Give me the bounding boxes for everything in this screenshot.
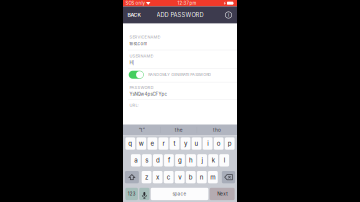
- staticText: d: [156, 157, 160, 164]
- button[interactable]: n: [197, 171, 207, 183]
- button[interactable]: w: [136, 137, 146, 150]
- staticText: b: [189, 173, 193, 181]
- button[interactable]: Next: [210, 188, 235, 200]
- button[interactable]: y: [181, 137, 190, 150]
- staticText: RANDOMLY GENERATE PASSWORD: [148, 72, 211, 77]
- staticText: c: [167, 173, 171, 181]
- staticText: SOS only: [126, 1, 145, 6]
- staticText: s: [145, 157, 148, 164]
- staticText: g: [178, 157, 182, 164]
- staticText: o: [217, 140, 221, 147]
- staticText: the: [175, 127, 183, 133]
- button[interactable]: Dictate: [139, 188, 149, 200]
- button[interactable]: t: [170, 137, 179, 150]
- staticText: Next: [217, 191, 227, 197]
- button[interactable]: z: [142, 171, 151, 183]
- staticText: URL:: [129, 103, 138, 108]
- staticText: y: [184, 140, 187, 147]
- button[interactable]: Shift: [125, 171, 139, 183]
- button[interactable]: p: [225, 137, 235, 150]
- staticText: j: [202, 157, 203, 164]
- staticText: q: [128, 140, 132, 147]
- staticText: u: [195, 140, 199, 147]
- button[interactable]: m: [208, 171, 218, 183]
- button[interactable]: Info: [220, 6, 237, 24]
- staticText: a: [134, 157, 137, 164]
- button[interactable]: v: [175, 171, 185, 183]
- button[interactable]: o: [214, 137, 224, 150]
- staticText: l: [224, 157, 225, 164]
- staticText: w: [139, 140, 144, 147]
- staticText: t: [173, 140, 175, 147]
- button[interactable]: BACK: [123, 6, 149, 24]
- button[interactable]: i: [203, 137, 213, 150]
- staticText: i: [207, 140, 208, 147]
- staticText: “t”: [139, 127, 145, 133]
- staticText: YsNQw4psCFYpc: [129, 92, 167, 97]
- staticText: p: [228, 140, 232, 147]
- button[interactable]: u: [192, 137, 201, 150]
- button[interactable]: k: [208, 154, 218, 166]
- button[interactable]: l: [219, 154, 229, 166]
- button[interactable]: Delete: [222, 171, 235, 183]
- staticText: z: [145, 173, 148, 181]
- staticText: h: [189, 157, 193, 164]
- button[interactable]: space: [151, 188, 208, 200]
- staticText: e: [150, 140, 154, 147]
- staticText: v: [178, 173, 181, 181]
- button[interactable]: h: [186, 154, 196, 166]
- staticText: SERVICE NAME:: [129, 35, 160, 39]
- staticText: USERNAME:: [129, 54, 153, 58]
- button[interactable]: g: [175, 154, 185, 166]
- staticText: x: [156, 173, 159, 181]
- button[interactable]: c: [164, 171, 174, 183]
- staticText: tho: [213, 127, 221, 133]
- staticText: i: [228, 12, 229, 18]
- staticText: k: [212, 157, 215, 164]
- staticText: 123: [128, 191, 136, 197]
- staticText: space: [173, 191, 187, 197]
- staticText: PASSWORD:: [129, 85, 154, 90]
- staticText: r: [162, 140, 164, 147]
- button[interactable]: b: [186, 171, 196, 183]
- button[interactable]: d: [153, 154, 163, 166]
- button[interactable]: r: [159, 137, 168, 150]
- staticText: H|: [129, 60, 133, 65]
- button[interactable]: e: [147, 137, 157, 150]
- button[interactable]: j: [197, 154, 207, 166]
- button[interactable]: Randomly generate password: [129, 71, 144, 79]
- button[interactable]: a: [131, 154, 141, 166]
- staticText: m: [210, 173, 215, 181]
- staticText: n: [200, 173, 204, 181]
- staticText: BACK: [127, 12, 141, 18]
- button[interactable]: x: [153, 171, 162, 183]
- button[interactable]: s: [142, 154, 152, 166]
- staticText: 12:37 pm: [178, 1, 197, 6]
- button[interactable]: 123: [125, 188, 138, 200]
- button[interactable]: f: [164, 154, 174, 166]
- staticText: f: [168, 157, 170, 164]
- staticText: test.com: [129, 41, 147, 46]
- staticText: ADD PASSWORD: [156, 11, 203, 18]
- button[interactable]: q: [125, 137, 135, 150]
